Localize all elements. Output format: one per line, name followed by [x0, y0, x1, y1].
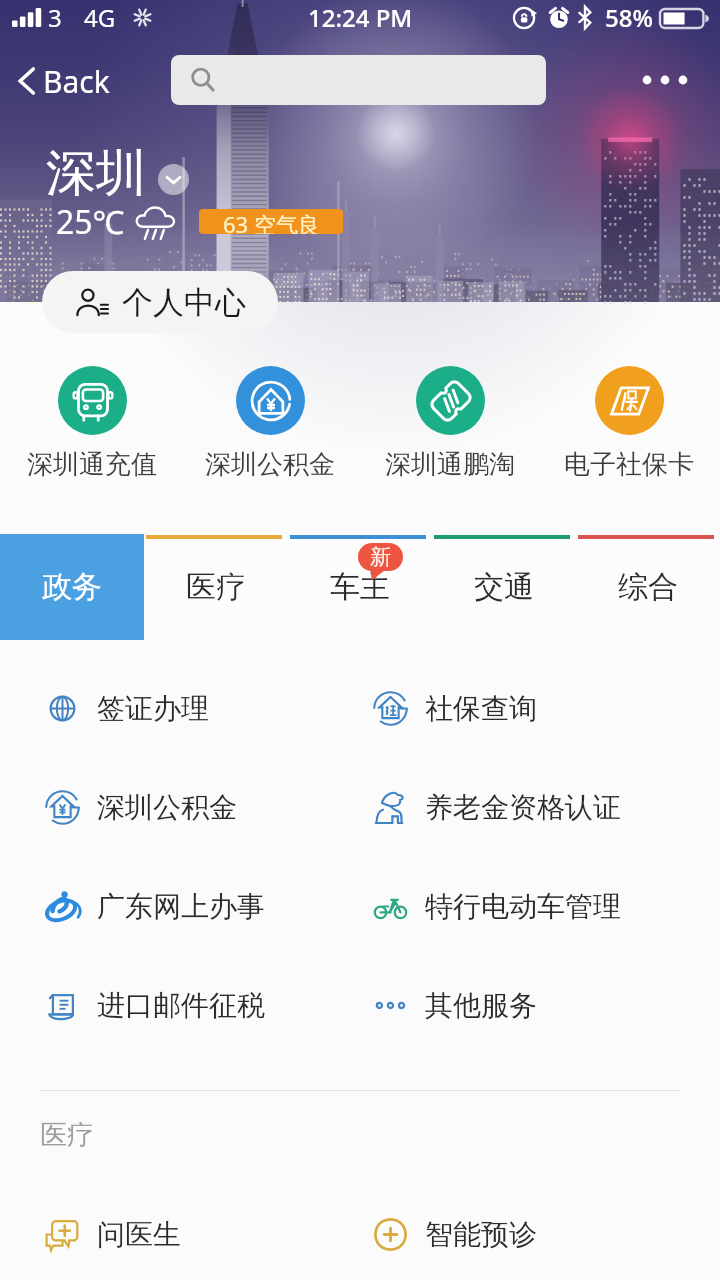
button[interactable]: Search — [171, 55, 546, 105]
staticText: 个人中心 — [122, 283, 246, 322]
staticText: 政务 — [42, 568, 102, 606]
staticText: 深圳公积金 — [97, 790, 237, 825]
staticText: 进口邮件征税 — [97, 988, 265, 1023]
button[interactable]: 其他服务 — [344, 956, 720, 1055]
button[interactable]: 深圳通充值 — [14, 366, 170, 481]
staticText: 3 — [48, 1, 62, 34]
staticText: 深圳 — [46, 142, 146, 205]
button[interactable]: 个人中心 — [42, 271, 278, 333]
button[interactable]: 问医生 — [0, 1185, 344, 1280]
staticText: 63 空气良 — [223, 209, 320, 234]
button[interactable]: 深圳公积金 — [0, 758, 344, 857]
button[interactable]: 广东网上办事 — [0, 857, 344, 956]
staticText: 特行电动车管理 — [425, 889, 621, 924]
button[interactable]: 医疗 — [144, 534, 288, 640]
staticText: 社保查询 — [425, 691, 537, 726]
button[interactable]: 交通 — [432, 534, 576, 640]
staticText: 深圳通鹏淘 — [385, 448, 515, 481]
button[interactable]: 签证办理 — [0, 659, 344, 758]
staticText: 其他服务 — [425, 988, 537, 1023]
staticText: 智能预诊 — [425, 1217, 537, 1252]
button[interactable]: 社保查询 — [344, 659, 720, 758]
staticText: 交通 — [474, 568, 534, 606]
staticText: 58% — [605, 1, 653, 34]
button[interactable]: 智能预诊 — [344, 1185, 720, 1280]
staticText: 新 — [370, 544, 391, 570]
staticText: 签证办理 — [97, 691, 209, 726]
staticText: 车主 — [330, 568, 390, 606]
button[interactable]: 深圳公积金 — [192, 366, 348, 481]
button[interactable]: 进口邮件征税 — [0, 956, 344, 1055]
staticText: 12:24 PM — [308, 1, 413, 34]
staticText: 综合 — [618, 568, 678, 606]
staticText: 电子社保卡 — [564, 448, 694, 481]
staticText: 深圳公积金 — [205, 448, 335, 481]
staticText: 深圳通充值 — [27, 448, 157, 481]
button[interactable]: More options — [626, 55, 704, 105]
staticText: Back — [43, 61, 110, 102]
staticText: 医疗 — [40, 1118, 94, 1152]
button[interactable]: 63 空气良 — [199, 209, 343, 234]
staticText: 25℃ — [56, 200, 125, 244]
staticText: 问医生 — [97, 1217, 181, 1252]
button[interactable]: 养老金资格认证 — [344, 758, 720, 857]
button[interactable]: Change city — [158, 164, 189, 195]
button[interactable]: 综合 — [576, 534, 720, 640]
button[interactable]: 电子社保卡 — [551, 366, 707, 481]
staticText: 医疗 — [186, 568, 246, 606]
button[interactable]: 深圳通鹏淘 — [372, 366, 528, 481]
staticText: 养老金资格认证 — [425, 790, 621, 825]
button[interactable]: 特行电动车管理 — [344, 857, 720, 956]
button[interactable]: 车主 — [288, 534, 432, 640]
button[interactable]: 政务 — [0, 534, 144, 640]
button[interactable]: Back — [18, 56, 110, 106]
staticText: 广东网上办事 — [97, 889, 265, 924]
staticText: 4G — [84, 1, 116, 34]
